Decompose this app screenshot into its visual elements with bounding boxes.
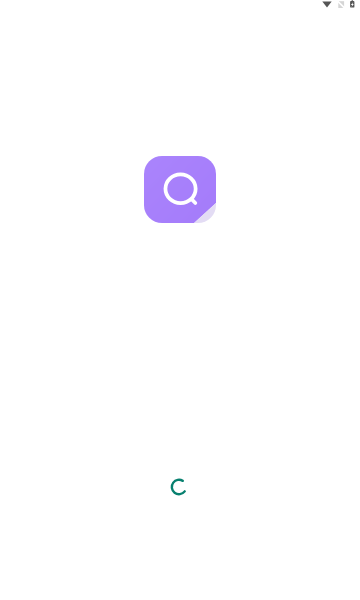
button[interactable]: App logo, search — [144, 156, 216, 223]
other: Loading — [170, 478, 188, 496]
other: Status bar — [0, 0, 360, 600]
